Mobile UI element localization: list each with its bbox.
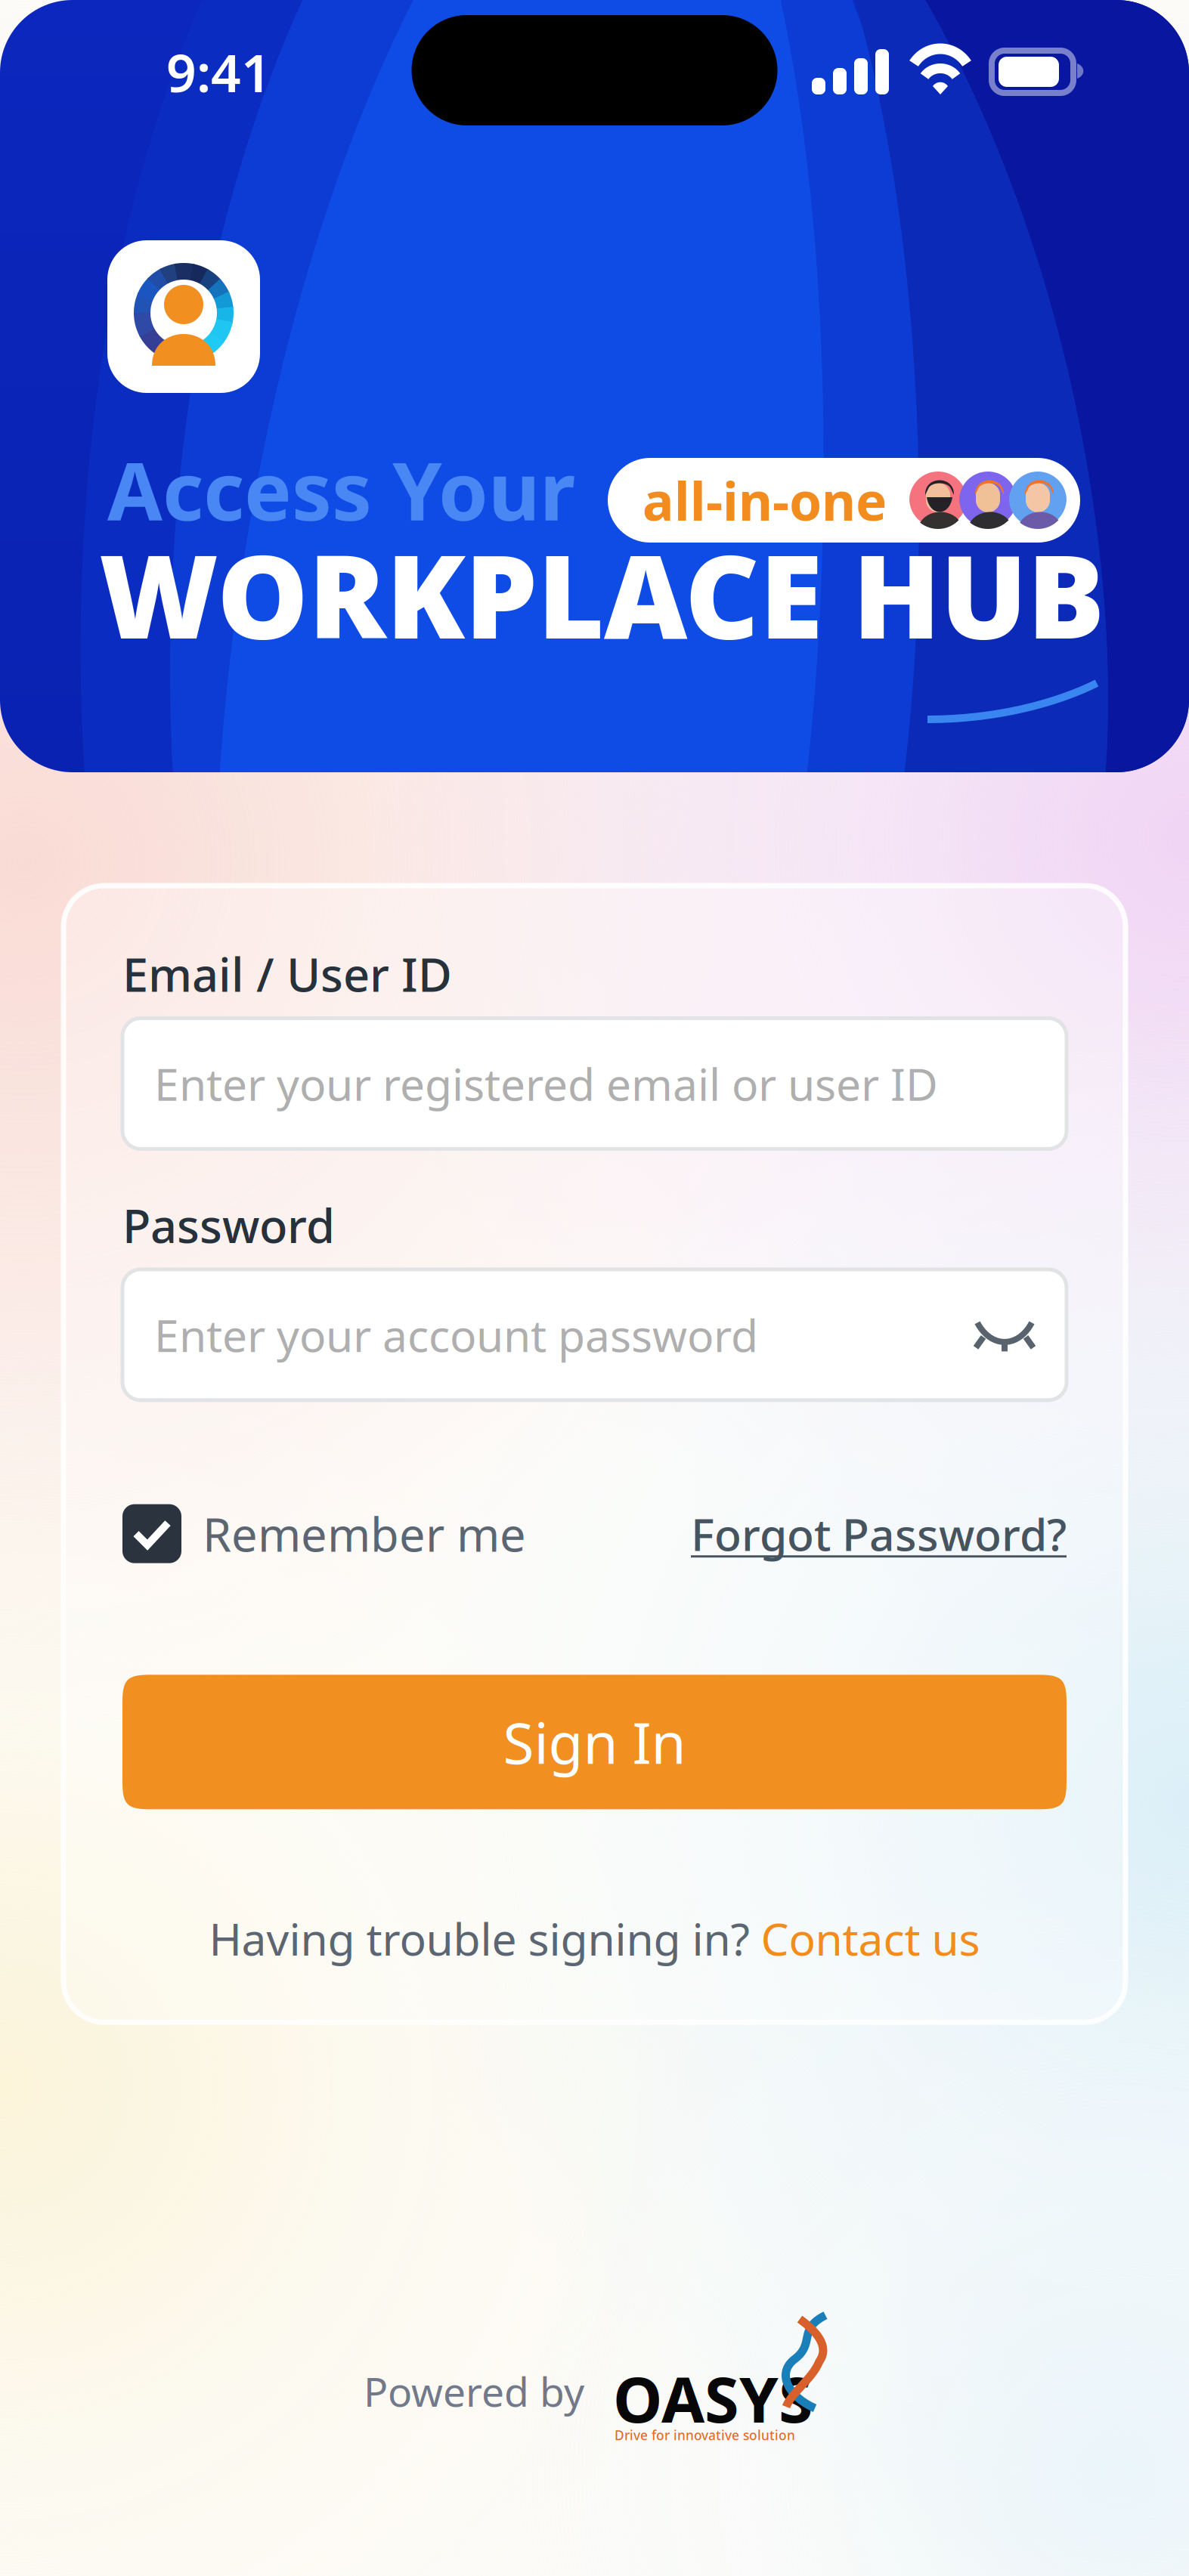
staticText: Access Your <box>107 437 575 543</box>
staticText: Email / User ID <box>122 943 452 1005</box>
staticText: Enter your registered email or user ID <box>154 1054 938 1113</box>
staticText: WORKPLACE HUB <box>99 518 1104 670</box>
staticText: Enter your account password <box>154 1305 758 1364</box>
button[interactable]: Contact us <box>749 1909 980 1968</box>
staticText: Remember me <box>203 1503 526 1564</box>
staticText: OASYS <box>613 2357 813 2440</box>
staticText: Drive for innovative solution <box>615 2426 795 2444</box>
staticText: all-in-one <box>642 465 887 535</box>
button[interactable]: Sign In <box>122 1675 1067 1809</box>
button[interactable]: Show password <box>974 1314 1035 1356</box>
button[interactable]: Remember me <box>122 1503 526 1564</box>
staticText: Having trouble signing in? <box>209 1909 749 1968</box>
staticText: Contact us <box>749 1909 980 1968</box>
staticText: Forgot Password? <box>691 1504 1067 1563</box>
staticText: Powered by <box>364 2364 584 2418</box>
staticText: 9:41 <box>166 37 271 107</box>
button[interactable]: Forgot Password? <box>691 1504 1067 1563</box>
staticText: Sign In <box>503 1705 686 1780</box>
staticText: Password <box>122 1194 335 1256</box>
